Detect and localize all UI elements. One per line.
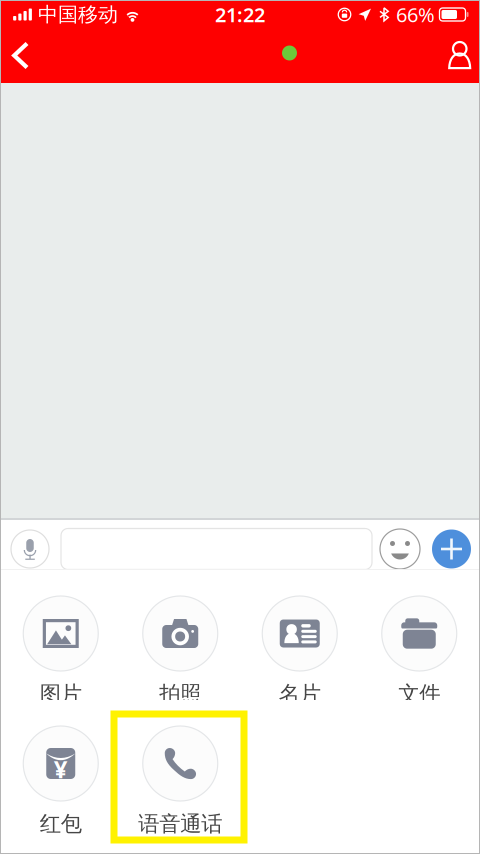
staticText: 拍照 bbox=[159, 681, 201, 707]
button[interactable]: ¥ bbox=[1, 700, 120, 830]
staticText: 名片 bbox=[279, 681, 321, 707]
button[interactable]: More options bbox=[432, 529, 471, 568]
staticText: 21:22 bbox=[215, 1, 265, 28]
staticText: 66% bbox=[396, 1, 435, 28]
staticText: 中国移动 bbox=[38, 2, 118, 27]
staticText: ¥ bbox=[54, 753, 68, 785]
button[interactable]: 拍照 bbox=[120, 570, 240, 700]
button[interactable]: 文件 bbox=[359, 570, 479, 700]
staticText: 语音通话 bbox=[138, 811, 222, 837]
button[interactable]: Back bbox=[12, 29, 44, 82]
button[interactable]: Voice message bbox=[11, 530, 49, 568]
button[interactable]: Emoji bbox=[380, 529, 420, 569]
button[interactable]: Message input field bbox=[61, 528, 372, 569]
button[interactable]: 语音通话 bbox=[120, 700, 240, 830]
button[interactable]: Chat info bbox=[448, 29, 472, 82]
staticText: 红包 bbox=[40, 811, 82, 837]
button[interactable]: 名片 bbox=[240, 570, 359, 700]
staticText: 图片 bbox=[40, 681, 82, 707]
staticText: 文件 bbox=[398, 681, 440, 707]
button[interactable]: 图片 bbox=[1, 570, 120, 700]
